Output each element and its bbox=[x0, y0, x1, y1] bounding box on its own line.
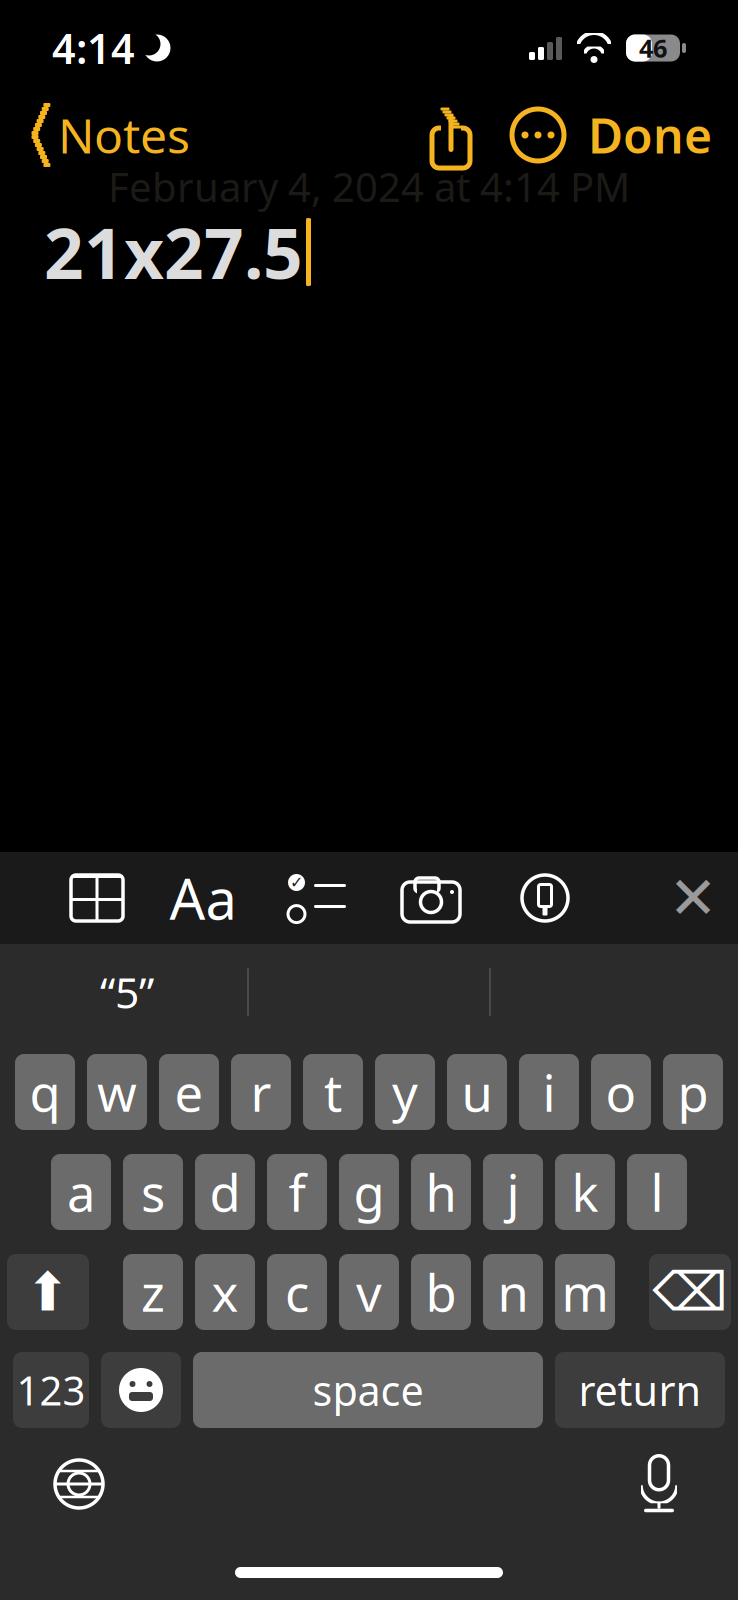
button[interactable]: Delete bbox=[649, 1254, 731, 1330]
button[interactable]: Checklist bbox=[260, 861, 374, 935]
button[interactable]: Share bbox=[414, 102, 488, 168]
button[interactable]: Table bbox=[48, 861, 146, 935]
button[interactable]: l bbox=[627, 1154, 687, 1230]
staticText: Notes bbox=[58, 103, 190, 167]
button[interactable]: j bbox=[483, 1154, 543, 1230]
button[interactable]: n bbox=[483, 1254, 543, 1330]
staticText: d bbox=[209, 1158, 240, 1226]
button[interactable]: g bbox=[339, 1154, 399, 1230]
staticText: February 4, 2024 at 4:14 PM bbox=[108, 160, 630, 213]
button[interactable]: y bbox=[375, 1054, 435, 1130]
staticText: Done bbox=[588, 103, 712, 167]
staticText: r bbox=[250, 1058, 271, 1126]
staticText: w bbox=[97, 1058, 137, 1126]
staticText: p bbox=[677, 1058, 708, 1126]
button[interactable]: m bbox=[555, 1254, 615, 1330]
button[interactable]: p bbox=[663, 1054, 723, 1130]
staticText: 21x27.5 bbox=[44, 206, 303, 298]
staticText: c bbox=[285, 1258, 309, 1326]
staticText: f bbox=[288, 1158, 305, 1226]
staticText: s bbox=[141, 1158, 165, 1226]
button[interactable]: c bbox=[267, 1254, 327, 1330]
staticText: t bbox=[324, 1058, 342, 1126]
staticText: l bbox=[650, 1158, 663, 1226]
staticText: h bbox=[425, 1158, 456, 1226]
button[interactable]: Format bbox=[146, 861, 260, 935]
button[interactable]: 123 bbox=[13, 1352, 89, 1428]
staticText: z bbox=[141, 1258, 165, 1326]
button[interactable]: Markup bbox=[488, 861, 602, 935]
button[interactable]: t bbox=[303, 1054, 363, 1130]
staticText: x bbox=[211, 1258, 238, 1326]
staticText: ✕ bbox=[668, 865, 717, 931]
staticText: m bbox=[561, 1258, 608, 1326]
staticText: u bbox=[461, 1058, 492, 1126]
button[interactable]: Shift bbox=[7, 1254, 89, 1330]
button[interactable]: Emoji bbox=[101, 1352, 181, 1428]
button[interactable]: More options bbox=[488, 107, 588, 163]
button[interactable]: d bbox=[195, 1154, 255, 1230]
button[interactable]: z bbox=[123, 1254, 183, 1330]
staticText: b bbox=[425, 1258, 456, 1326]
button[interactable]: Camera bbox=[374, 861, 488, 935]
staticText: 123 bbox=[16, 1363, 85, 1416]
staticText: j bbox=[506, 1158, 519, 1226]
button[interactable]: f bbox=[267, 1154, 327, 1230]
button[interactable]: q bbox=[15, 1054, 75, 1130]
staticText: g bbox=[353, 1158, 384, 1226]
button[interactable]: Done bbox=[588, 93, 738, 177]
staticText: n bbox=[497, 1258, 528, 1326]
button[interactable]: Dictate bbox=[614, 1446, 704, 1522]
button[interactable]: o bbox=[591, 1054, 651, 1130]
staticText: q bbox=[29, 1058, 60, 1126]
button[interactable]: a bbox=[51, 1154, 111, 1230]
button[interactable]: v bbox=[339, 1254, 399, 1330]
button[interactable]: e bbox=[159, 1054, 219, 1130]
button[interactable]: Next keyboard bbox=[34, 1446, 124, 1522]
button[interactable]: return bbox=[555, 1352, 725, 1428]
button[interactable]: k bbox=[555, 1154, 615, 1230]
button[interactable]: “5” bbox=[7, 953, 247, 1031]
staticText: v bbox=[356, 1258, 382, 1326]
staticText: e bbox=[174, 1058, 203, 1126]
staticText: k bbox=[571, 1158, 598, 1226]
staticText: y bbox=[392, 1058, 418, 1126]
staticText: Aa bbox=[169, 861, 236, 935]
button[interactable]: i bbox=[519, 1054, 579, 1130]
button[interactable]: Notes bbox=[0, 95, 190, 175]
button[interactable]: s bbox=[123, 1154, 183, 1230]
staticText: space bbox=[312, 1363, 423, 1417]
staticText: 46 bbox=[639, 31, 667, 65]
button[interactable]: x bbox=[195, 1254, 255, 1330]
staticText: ⬆ bbox=[25, 1262, 70, 1322]
staticText: return bbox=[578, 1363, 701, 1417]
staticText: o bbox=[605, 1058, 636, 1126]
staticText: i bbox=[542, 1058, 555, 1126]
staticText: “5” bbox=[100, 964, 154, 1020]
button[interactable]: w bbox=[87, 1054, 147, 1130]
staticText: ✓ bbox=[290, 873, 303, 892]
button[interactable]: space bbox=[193, 1352, 543, 1428]
button[interactable]: h bbox=[411, 1154, 471, 1230]
button[interactable]: u bbox=[447, 1054, 507, 1130]
staticText: a bbox=[67, 1158, 95, 1226]
staticText: ⌫ bbox=[652, 1262, 727, 1322]
staticText: 4:14 bbox=[52, 21, 135, 75]
button[interactable]: Close keyboard bbox=[648, 861, 738, 935]
button[interactable]: r bbox=[231, 1054, 291, 1130]
button[interactable]: b bbox=[411, 1254, 471, 1330]
